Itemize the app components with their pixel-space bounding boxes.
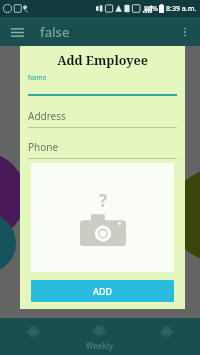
- staticText: Add Employee: [28, 52, 177, 69]
- button[interactable]: Navigation tab: [0, 318, 66, 355]
- staticText: Phone: [28, 140, 59, 154]
- button[interactable]: Open navigation drawer: [6, 21, 28, 43]
- staticText: Name: [28, 73, 47, 82]
- button[interactable]: Navigation tab: [133, 318, 200, 355]
- staticText: Weekly: [86, 340, 113, 351]
- button[interactable]: Address: [28, 109, 177, 128]
- staticText: false: [40, 23, 70, 41]
- button[interactable]: Phone: [28, 140, 177, 159]
- button[interactable]: Add employee photo: [31, 163, 174, 272]
- staticText: Address: [28, 109, 66, 123]
- staticText: 8:39 a.m.: [166, 4, 197, 14]
- staticText: ?: [99, 189, 108, 212]
- button[interactable]: More options: [174, 21, 196, 43]
- staticText: ADD: [93, 285, 113, 297]
- button[interactable]: ADD: [31, 280, 174, 302]
- button[interactable]: Weekly: [66, 318, 133, 355]
- staticText: 80%: [144, 4, 158, 14]
